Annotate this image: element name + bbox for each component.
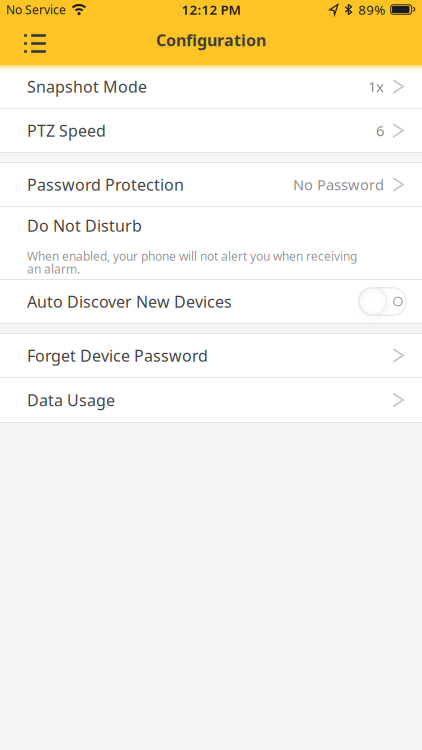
- staticText: Snapshot Mode: [27, 76, 147, 97]
- staticText: 1x: [368, 77, 384, 96]
- staticText: Configuration: [156, 29, 266, 51]
- staticText: No Service: [6, 1, 66, 17]
- button[interactable]: Menu: [0, 34, 46, 53]
- button[interactable]: Auto Discover New Devices: [0, 280, 422, 323]
- button[interactable]: Data Usage: [0, 378, 422, 422]
- staticText: Auto Discover New Devices: [27, 291, 232, 312]
- button[interactable]: Password Protection: [0, 163, 422, 206]
- staticText: When enabled, your phone will not alert …: [27, 248, 357, 277]
- staticText: Forget Device Password: [27, 345, 208, 366]
- staticText: Do Not Disturb: [27, 215, 142, 236]
- staticText: 6: [376, 121, 384, 140]
- button[interactable]: Do Not Disturb: [0, 207, 422, 279]
- staticText: 89%: [358, 1, 385, 18]
- staticText: PTZ Speed: [27, 120, 106, 141]
- button[interactable]: Snapshot Mode: [0, 65, 422, 108]
- staticText: Password Protection: [27, 174, 184, 195]
- button[interactable]: Forget Device Password: [0, 334, 422, 377]
- staticText: 12:12 PM: [181, 1, 240, 18]
- staticText: Data Usage: [27, 389, 115, 411]
- staticText: No Password: [293, 175, 384, 194]
- button[interactable]: PTZ Speed: [0, 109, 422, 152]
